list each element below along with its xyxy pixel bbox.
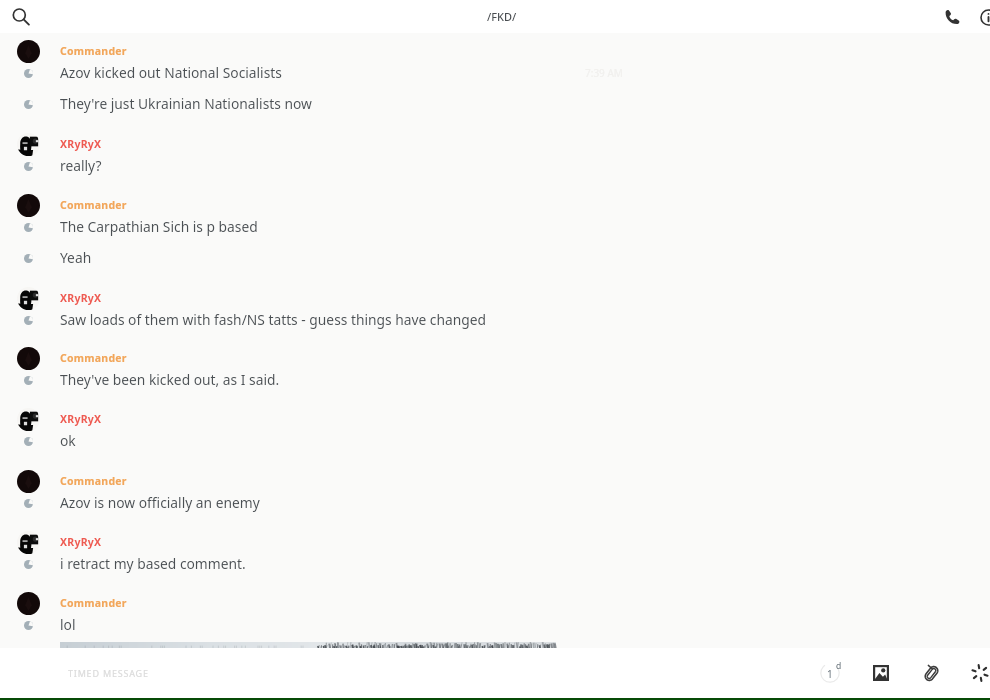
staticText: Azov is now officially an enemy <box>60 493 260 512</box>
button[interactable]: Commander <box>0 40 990 124</box>
staticText: TIMED MESSAGE <box>68 667 149 679</box>
staticText: They're just Ukrainian Nationalists now <box>60 94 312 113</box>
button[interactable]: Attach image <box>864 656 898 690</box>
button[interactable]: Message timer <box>813 656 847 690</box>
staticText: really? <box>60 156 102 175</box>
staticText: Commander <box>60 44 127 58</box>
button[interactable]: Commander <box>0 194 990 278</box>
staticText: The Carpathian Sich is p based <box>60 217 258 236</box>
staticText: XRyRyX <box>60 535 102 549</box>
staticText: XRyRyX <box>60 137 102 151</box>
button[interactable]: Attach file <box>914 656 948 690</box>
staticText: lol <box>60 615 76 634</box>
staticText: Commander <box>60 596 127 610</box>
staticText: They've been kicked out, as I said. <box>60 370 280 389</box>
staticText: i retract my based comment. <box>60 554 246 573</box>
button[interactable]: XRyRyX <box>0 408 990 461</box>
staticText: ok <box>60 431 76 450</box>
button[interactable]: XRyRyX <box>0 531 990 584</box>
staticText: Yeah <box>60 248 92 267</box>
staticText: Commander <box>60 351 127 365</box>
staticText: 7:39 AM <box>585 66 623 80</box>
button[interactable]: XRyRyX <box>0 287 990 340</box>
staticText: XRyRyX <box>60 412 102 426</box>
staticText: Saw loads of them with fash/NS tatts - g… <box>60 310 487 329</box>
button[interactable]: Call <box>938 3 966 31</box>
staticText: /FKD/ <box>487 9 517 24</box>
staticText: 1 <box>827 667 833 681</box>
staticText: Commander <box>60 474 127 488</box>
button[interactable]: Commander <box>0 347 990 400</box>
button[interactable]: Commander <box>0 592 990 645</box>
staticText: d <box>836 660 842 672</box>
button[interactable]: XRyRyX <box>0 133 990 186</box>
button[interactable]: Conversation info <box>974 3 990 31</box>
button[interactable]: Search <box>7 3 34 30</box>
staticText: Azov kicked out National Socialists <box>60 63 282 82</box>
staticText: Commander <box>60 198 127 212</box>
staticText: XRyRyX <box>60 291 102 305</box>
button[interactable]: Commander <box>0 470 990 523</box>
button[interactable]: Stickers <box>963 656 990 690</box>
